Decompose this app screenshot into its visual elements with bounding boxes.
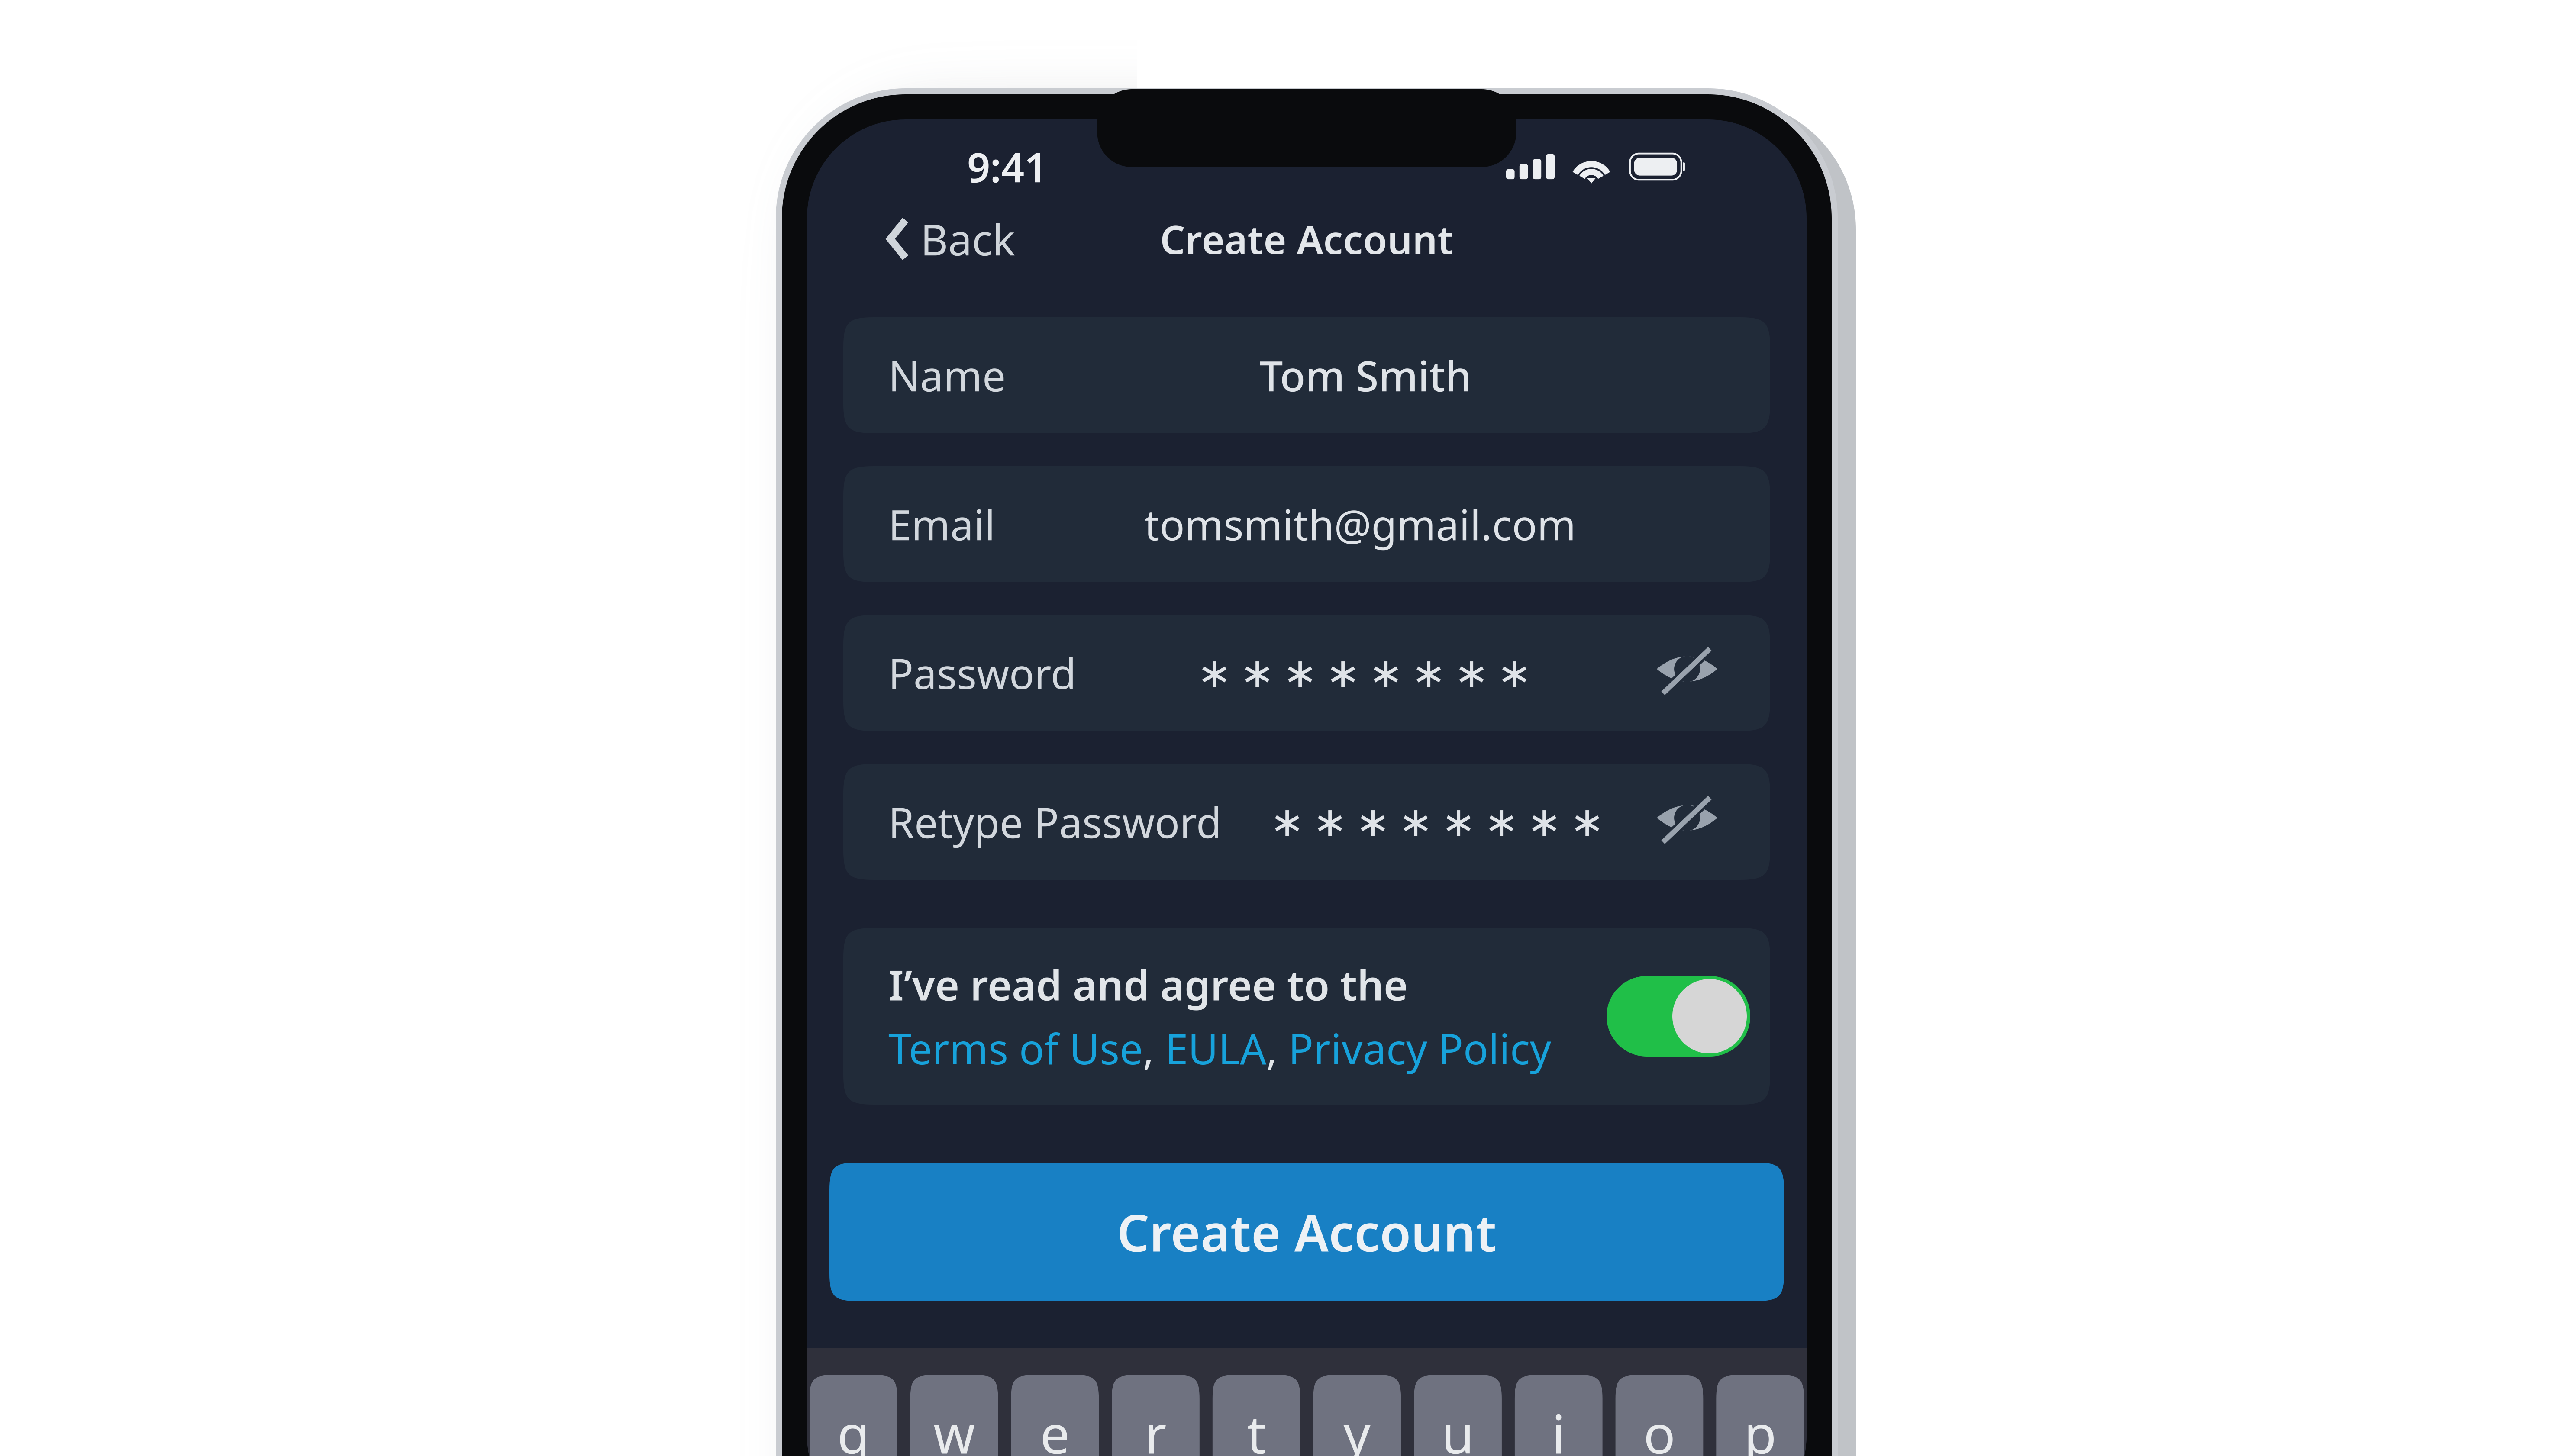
- staticText: ∗ ∗ ∗ ∗ ∗ ∗ ∗ ∗: [1197, 649, 1532, 697]
- staticText: 9:41: [967, 140, 1047, 193]
- staticText: tomsmith@gmail.com: [1144, 497, 1576, 552]
- staticText: y: [1343, 1398, 1371, 1456]
- button[interactable]: Privacy Policy: [1288, 1021, 1551, 1076]
- staticText: Create Account: [1117, 1198, 1497, 1266]
- staticText: Retype Password: [888, 794, 1222, 850]
- button[interactable]: Show Password: [1652, 615, 1722, 731]
- button[interactable]: Agree to terms: [1607, 976, 1750, 1057]
- staticText: r: [1145, 1398, 1167, 1456]
- staticText: e: [1040, 1398, 1070, 1456]
- button[interactable]: Show Retype Password: [1652, 764, 1722, 880]
- staticText: p: [1744, 1398, 1776, 1456]
- button[interactable]: Back: [876, 201, 1026, 277]
- staticText: Privacy Policy: [1288, 1021, 1551, 1076]
- staticText: o: [1643, 1398, 1675, 1456]
- staticText: i: [1552, 1398, 1566, 1456]
- button[interactable]: Create Account: [829, 1163, 1784, 1301]
- staticText: t: [1247, 1398, 1266, 1456]
- staticText: ∗ ∗ ∗ ∗ ∗ ∗ ∗ ∗: [1270, 798, 1604, 846]
- staticText: u: [1441, 1398, 1474, 1456]
- staticText: w: [933, 1398, 975, 1456]
- button[interactable]: EULA: [1165, 1021, 1266, 1076]
- staticText: q: [837, 1398, 870, 1456]
- staticText: ,: [1143, 1021, 1165, 1076]
- button[interactable]: Terms of Use: [888, 1021, 1143, 1076]
- staticText: ,: [1266, 1021, 1288, 1076]
- staticText: I’ve read and agree to the: [888, 957, 1408, 1012]
- staticText: Terms of Use: [888, 1021, 1143, 1076]
- staticText: Name: [888, 348, 1006, 403]
- staticText: Tom Smith: [1260, 348, 1471, 403]
- staticText: Create Account: [1160, 213, 1454, 265]
- staticText: Email: [888, 497, 995, 552]
- staticText: EULA: [1165, 1021, 1266, 1076]
- staticText: Back: [920, 211, 1015, 267]
- staticText: Password: [888, 645, 1076, 701]
